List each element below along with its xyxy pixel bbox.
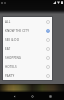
button[interactable]: SHOPPING bbox=[3, 53, 52, 62]
button[interactable]: HOTELS bbox=[3, 62, 52, 71]
button[interactable]: PARTY bbox=[3, 71, 52, 80]
staticText: EAT bbox=[5, 47, 11, 51]
staticText: PARTY bbox=[5, 74, 15, 78]
staticText: SHOPPING bbox=[5, 56, 22, 60]
button[interactable]: Recents bbox=[46, 92, 54, 100]
button[interactable]: Back bbox=[10, 92, 18, 100]
staticText: HOTELS bbox=[5, 65, 17, 69]
button[interactable]: KNOW THE CITY bbox=[3, 26, 52, 35]
staticText: SEE & DO bbox=[5, 38, 20, 42]
staticText: KNOW THE CITY bbox=[5, 29, 29, 33]
button[interactable]: SEE & DO bbox=[3, 35, 52, 44]
button[interactable]: ALL bbox=[3, 17, 52, 26]
button[interactable]: EAT bbox=[3, 44, 52, 53]
button[interactable]: Home bbox=[28, 92, 36, 100]
staticText: ALL bbox=[5, 20, 11, 24]
